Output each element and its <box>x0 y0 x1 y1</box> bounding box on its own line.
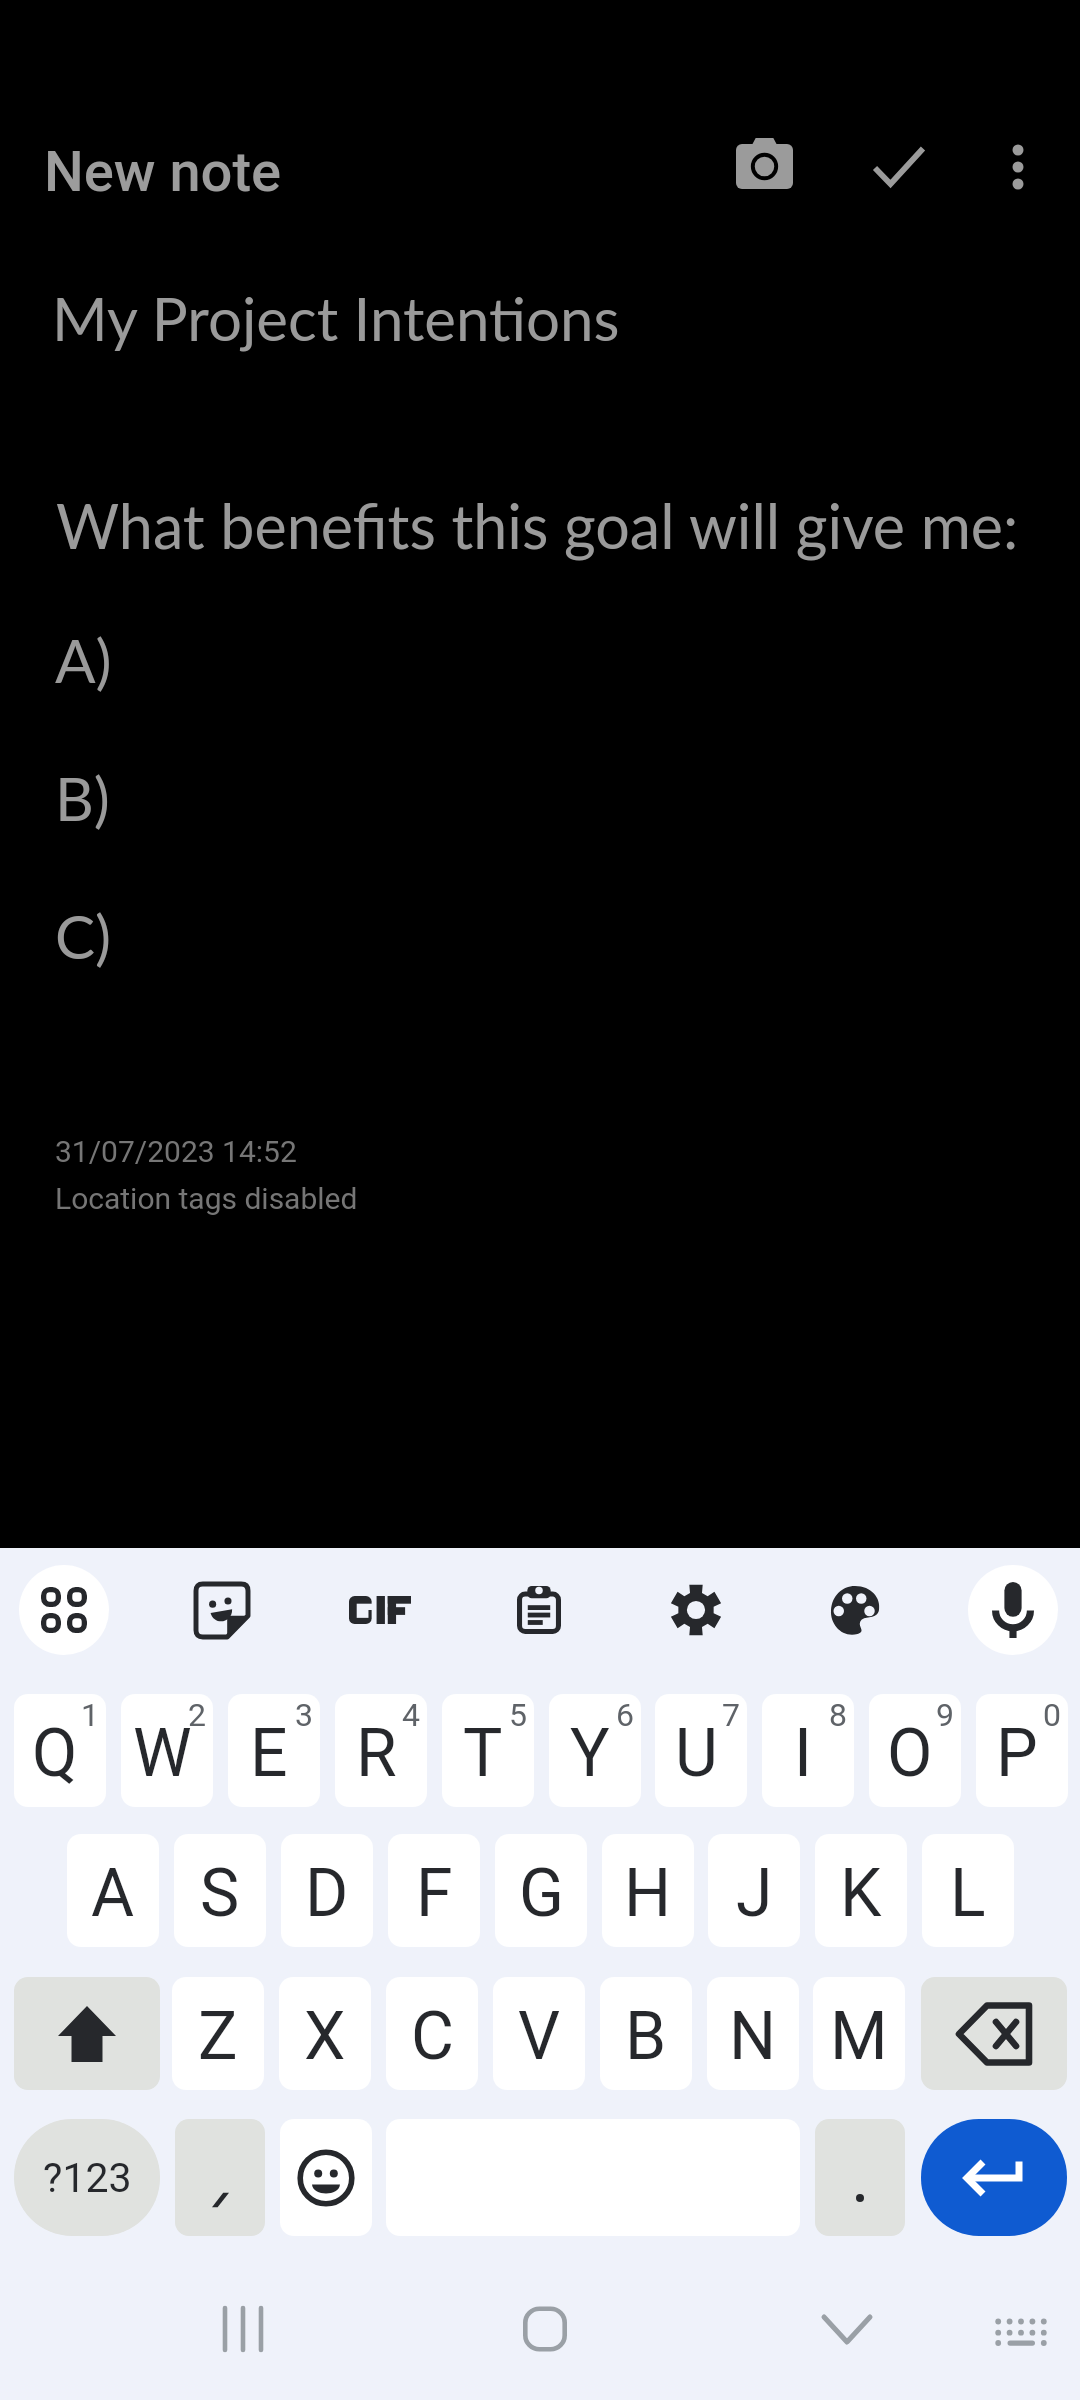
button[interactable]: 9 <box>869 1694 961 1807</box>
staticText: J <box>736 1855 773 1932</box>
button[interactable]: Clipboard <box>489 1560 589 1660</box>
staticText: C <box>411 1998 454 2075</box>
staticText: B <box>625 1998 667 2075</box>
button[interactable]: Save <box>844 112 954 222</box>
button[interactable]: K <box>815 1834 907 1947</box>
button[interactable]: Backspace <box>921 1977 1067 2090</box>
button[interactable]: 0 <box>976 1694 1068 1807</box>
button[interactable]: X <box>279 1977 371 2090</box>
staticText: A <box>91 1855 135 1932</box>
button[interactable]: S <box>174 1834 266 1947</box>
button[interactable]: More options <box>963 112 1073 222</box>
button[interactable]: H <box>602 1834 694 1947</box>
button[interactable]: 1 <box>14 1694 106 1807</box>
button[interactable]: Hide keyboard <box>797 2279 897 2379</box>
staticText: 9 <box>936 1696 954 1734</box>
button[interactable]: 4 <box>335 1694 427 1807</box>
button[interactable]: 8 <box>762 1694 854 1807</box>
staticText: U <box>675 1715 718 1792</box>
button[interactable]: J <box>708 1834 800 1947</box>
staticText: 5 <box>509 1696 527 1734</box>
button[interactable]: B <box>600 1977 692 2090</box>
staticText: 8 <box>829 1696 847 1734</box>
button[interactable]: N <box>707 1977 799 2090</box>
staticText: T <box>463 1715 503 1792</box>
staticText: N <box>729 1998 777 2075</box>
button[interactable]: Settings <box>646 1560 746 1660</box>
staticText: 1 <box>81 1696 99 1734</box>
staticText: F <box>416 1855 453 1932</box>
staticText: K <box>840 1855 882 1932</box>
button[interactable]: Shift <box>14 1977 160 2090</box>
button[interactable]: 7 <box>655 1694 747 1807</box>
staticText: I <box>794 1715 812 1792</box>
staticText: New note <box>44 139 282 205</box>
staticText: 31/07/2023 14:52 <box>55 1134 297 1169</box>
staticText: What benefits this goal will give me: <box>56 489 1019 562</box>
button[interactable]: Stickers <box>172 1560 272 1660</box>
staticText: 6 <box>616 1696 634 1734</box>
button[interactable]: 5 <box>442 1694 534 1807</box>
staticText: D <box>305 1855 349 1932</box>
button[interactable]: Home <box>495 2279 595 2379</box>
staticText: 3 <box>295 1696 313 1734</box>
staticText: C) <box>55 900 112 972</box>
staticText: 7 <box>722 1696 740 1734</box>
staticText: 4 <box>402 1696 420 1734</box>
staticText: G <box>519 1855 564 1932</box>
button[interactable]: Keyboard modes <box>19 1565 109 1655</box>
button[interactable]: 2 <box>121 1694 213 1807</box>
staticText: H <box>624 1855 672 1932</box>
staticText: Y <box>570 1715 610 1792</box>
button[interactable]: Change keyboard <box>971 2279 1071 2379</box>
button[interactable]: L <box>922 1834 1014 1947</box>
button[interactable]: F <box>388 1834 480 1947</box>
button[interactable]: C <box>386 1977 478 2090</box>
staticText: E <box>250 1715 288 1792</box>
staticText: Location tags disabled <box>55 1181 358 1216</box>
staticText: L <box>950 1855 986 1932</box>
button[interactable]: GIF <box>330 1560 430 1660</box>
button[interactable]: G <box>495 1834 587 1947</box>
staticText: 2 <box>188 1696 206 1734</box>
staticText: R <box>356 1715 397 1792</box>
button[interactable]: Z <box>172 1977 264 2090</box>
button[interactable]: Insert image <box>709 108 819 218</box>
staticText: S <box>200 1855 240 1932</box>
button[interactable]: Voice input <box>968 1565 1058 1655</box>
staticText: M <box>830 1998 888 2075</box>
staticText: B) <box>55 762 110 834</box>
button[interactable]: M <box>813 1977 905 2090</box>
button[interactable]: 6 <box>549 1694 641 1807</box>
staticText: V <box>518 1998 561 2075</box>
staticText: O <box>887 1715 933 1792</box>
staticText: W <box>133 1715 192 1792</box>
staticText: Q <box>32 1715 78 1792</box>
button[interactable]: Recent apps <box>193 2279 293 2379</box>
button[interactable]: 3 <box>228 1694 320 1807</box>
staticText: My Project Intentions <box>52 282 620 354</box>
button[interactable]: D <box>281 1834 373 1947</box>
staticText: X <box>304 1998 346 2075</box>
button[interactable]: V <box>493 1977 585 2090</box>
button[interactable]: Comma <box>175 2119 265 2236</box>
staticText: 0 <box>1043 1696 1061 1734</box>
staticText: P <box>996 1715 1038 1792</box>
button[interactable]: Period <box>815 2119 905 2236</box>
button[interactable]: ?123 <box>14 2119 160 2236</box>
staticText: ?123 <box>43 2154 132 2202</box>
staticText: Z <box>198 1998 238 2075</box>
staticText: A) <box>55 624 112 696</box>
button[interactable]: Enter <box>921 2119 1067 2236</box>
button[interactable]: A <box>67 1834 159 1947</box>
button[interactable]: Emoji <box>280 2119 372 2236</box>
button[interactable]: Themes <box>805 1560 905 1660</box>
